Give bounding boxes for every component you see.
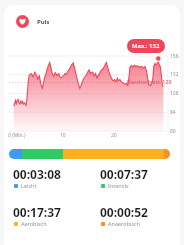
staticText: 132 [170, 71, 179, 78]
button[interactable]: 00:17:37 [9, 204, 91, 229]
button[interactable]: 00:03:08 [9, 166, 91, 191]
staticText: Aerobisch [21, 220, 47, 227]
button[interactable]: Puls [16, 15, 50, 28]
button[interactable]: Max.: 152 [127, 39, 165, 53]
other: Puls [16, 15, 29, 28]
staticText: 00:07:37 [100, 166, 148, 182]
button[interactable]: 00:07:37 [96, 166, 178, 191]
staticText: 84 [170, 109, 176, 116]
staticText: Max.: 152 [132, 42, 160, 50]
staticText: Leicht [21, 182, 37, 189]
staticText: 00:00:52 [100, 204, 148, 220]
staticText: 156 [170, 53, 179, 60]
staticText: 108 [170, 90, 179, 97]
staticText: 10 [60, 132, 66, 139]
staticText: 00:17:37 [13, 204, 61, 220]
staticText: 60 [170, 128, 176, 135]
button[interactable] [9, 149, 170, 159]
staticText: 0 (Min.) [8, 132, 26, 139]
staticText: Durchschnitt: 129 [127, 78, 172, 85]
staticText: Intensiv [108, 182, 129, 189]
staticText: 20 [111, 132, 117, 139]
staticText: 00:03:08 [13, 166, 61, 182]
staticText: Anaerobisch [108, 220, 141, 227]
button[interactable]: 00:00:52 [96, 204, 178, 229]
staticText: Puls [37, 18, 50, 26]
